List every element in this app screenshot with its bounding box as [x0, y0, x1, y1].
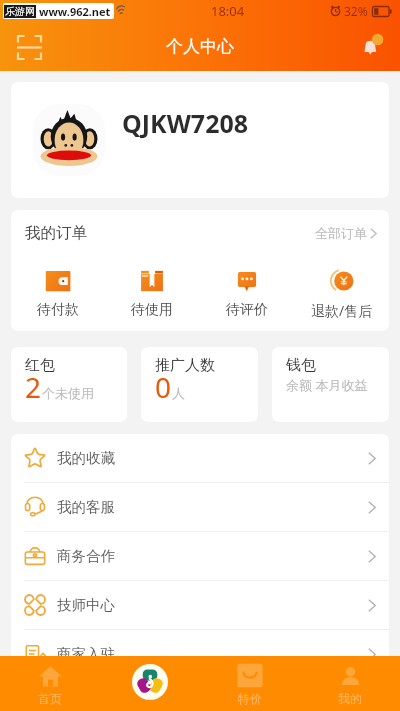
staticText: 待使用 — [131, 301, 173, 319]
staticText: 乐游网 — [5, 5, 35, 18]
button[interactable]: Notifications — [355, 30, 389, 64]
staticText: 待付款 — [37, 301, 79, 319]
button[interactable]: 首页 — [0, 656, 100, 711]
staticText: 退款/售后 — [311, 301, 373, 320]
staticText: 待评价 — [226, 301, 268, 319]
button[interactable]: 我的收藏 — [11, 434, 389, 482]
button[interactable]: 商务合作 — [11, 532, 389, 580]
staticText: 推广人数 — [155, 356, 215, 375]
staticText: 我的订单 — [25, 223, 87, 243]
staticText: 钱包 — [286, 356, 316, 375]
button[interactable]: Scan QR code — [12, 30, 46, 64]
staticText: 我的收藏 — [57, 449, 115, 467]
staticText: 商家入驻 — [57, 645, 115, 663]
button[interactable]: 钱包 — [272, 347, 389, 422]
staticText: 我的客服 — [57, 498, 115, 516]
staticText: QJKW7208 — [122, 106, 249, 140]
staticText: 余额 本月收益 — [286, 376, 368, 394]
button[interactable]: 红包 — [11, 347, 127, 422]
button[interactable]: 我的 — [300, 656, 400, 711]
button[interactable]: 待使用 — [105, 256, 199, 319]
button[interactable]: Open main menu — [100, 656, 200, 711]
button[interactable]: QJKW7208 — [11, 82, 389, 198]
button[interactable]: 退款/售后 — [294, 256, 389, 320]
staticText: 我的 — [338, 691, 362, 706]
staticText: 全部订单 — [315, 225, 367, 241]
staticText: 技师中心 — [57, 596, 115, 614]
staticText: 0 — [155, 368, 172, 406]
staticText: 2 — [25, 368, 42, 406]
staticText: 人 — [172, 385, 185, 401]
button[interactable]: 特价 — [200, 656, 300, 711]
button[interactable]: 推广人数 — [141, 347, 258, 422]
staticText: 32% — [344, 3, 368, 19]
staticText: www.962.net — [39, 4, 111, 19]
button[interactable]: 我的订单 — [11, 210, 389, 256]
staticText: 首页 — [38, 691, 62, 706]
staticText: 个未使用 — [42, 385, 94, 401]
button[interactable]: 技师中心 — [11, 581, 389, 629]
button[interactable]: 待付款 — [11, 256, 105, 319]
staticText: 商务合作 — [57, 547, 115, 565]
staticText: 个人中心 — [166, 36, 234, 57]
staticText: 特价 — [238, 691, 262, 706]
button[interactable]: 我的客服 — [11, 483, 389, 531]
staticText: 18:04 — [211, 2, 245, 20]
staticText: 红包 — [25, 356, 55, 375]
button[interactable]: 商家入驻 — [11, 630, 389, 678]
button[interactable]: 待评价 — [199, 256, 294, 319]
